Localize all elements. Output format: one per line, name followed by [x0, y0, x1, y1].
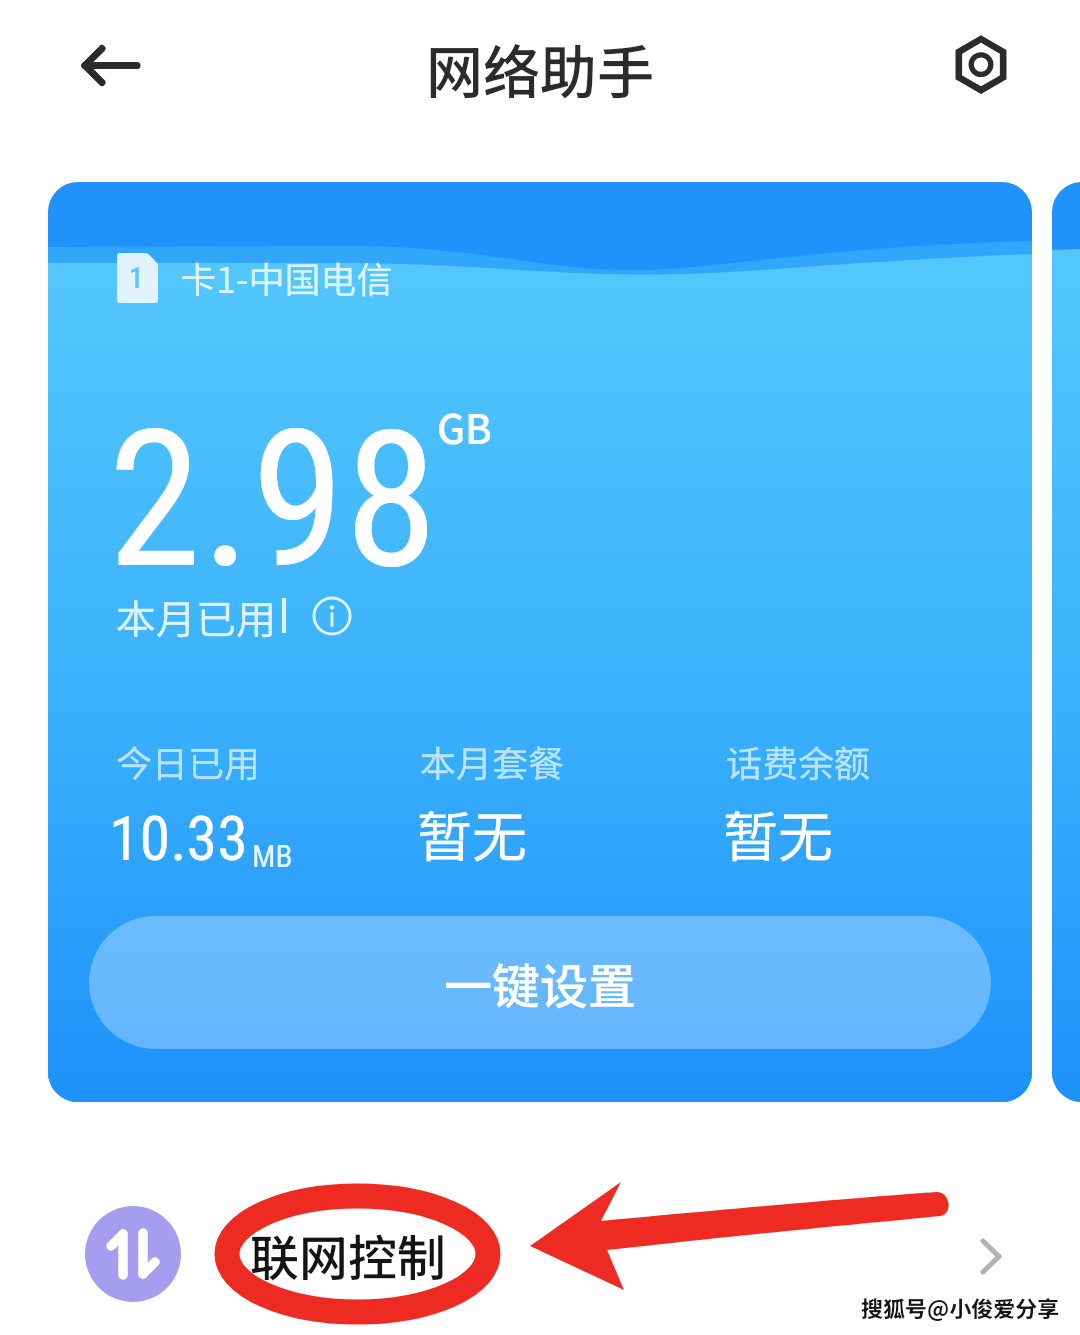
staticText: GB	[437, 398, 492, 456]
staticText: 暂无	[723, 793, 834, 873]
button[interactable]: 联网控制	[0, 1182, 1080, 1332]
button[interactable]: Card 2	[1052, 182, 1080, 1102]
staticText: 网络助手	[0, 27, 1080, 110]
staticText: 本月已用	[116, 588, 276, 646]
staticText: 今日已用	[116, 735, 261, 787]
button[interactable]: 一键设置	[89, 916, 991, 1049]
button[interactable]: Back	[64, 25, 144, 105]
button[interactable]: Settings	[940, 25, 1020, 105]
staticText: 一键设置	[444, 948, 637, 1018]
staticText: 1	[129, 261, 144, 295]
staticText: 搜狐号@小俊爱分享	[861, 1291, 1060, 1323]
staticText: MB	[252, 838, 293, 874]
staticText: 本月套餐	[420, 735, 565, 787]
staticText: 2.98	[108, 390, 438, 611]
staticText: 10.33	[109, 802, 248, 875]
staticText: 卡1-中国电信	[180, 251, 393, 303]
button[interactable]: 1	[48, 182, 1032, 1102]
staticText: 联网控制	[250, 1219, 447, 1290]
staticText: 话费余额	[726, 735, 871, 787]
staticText: 暂无	[417, 793, 528, 873]
